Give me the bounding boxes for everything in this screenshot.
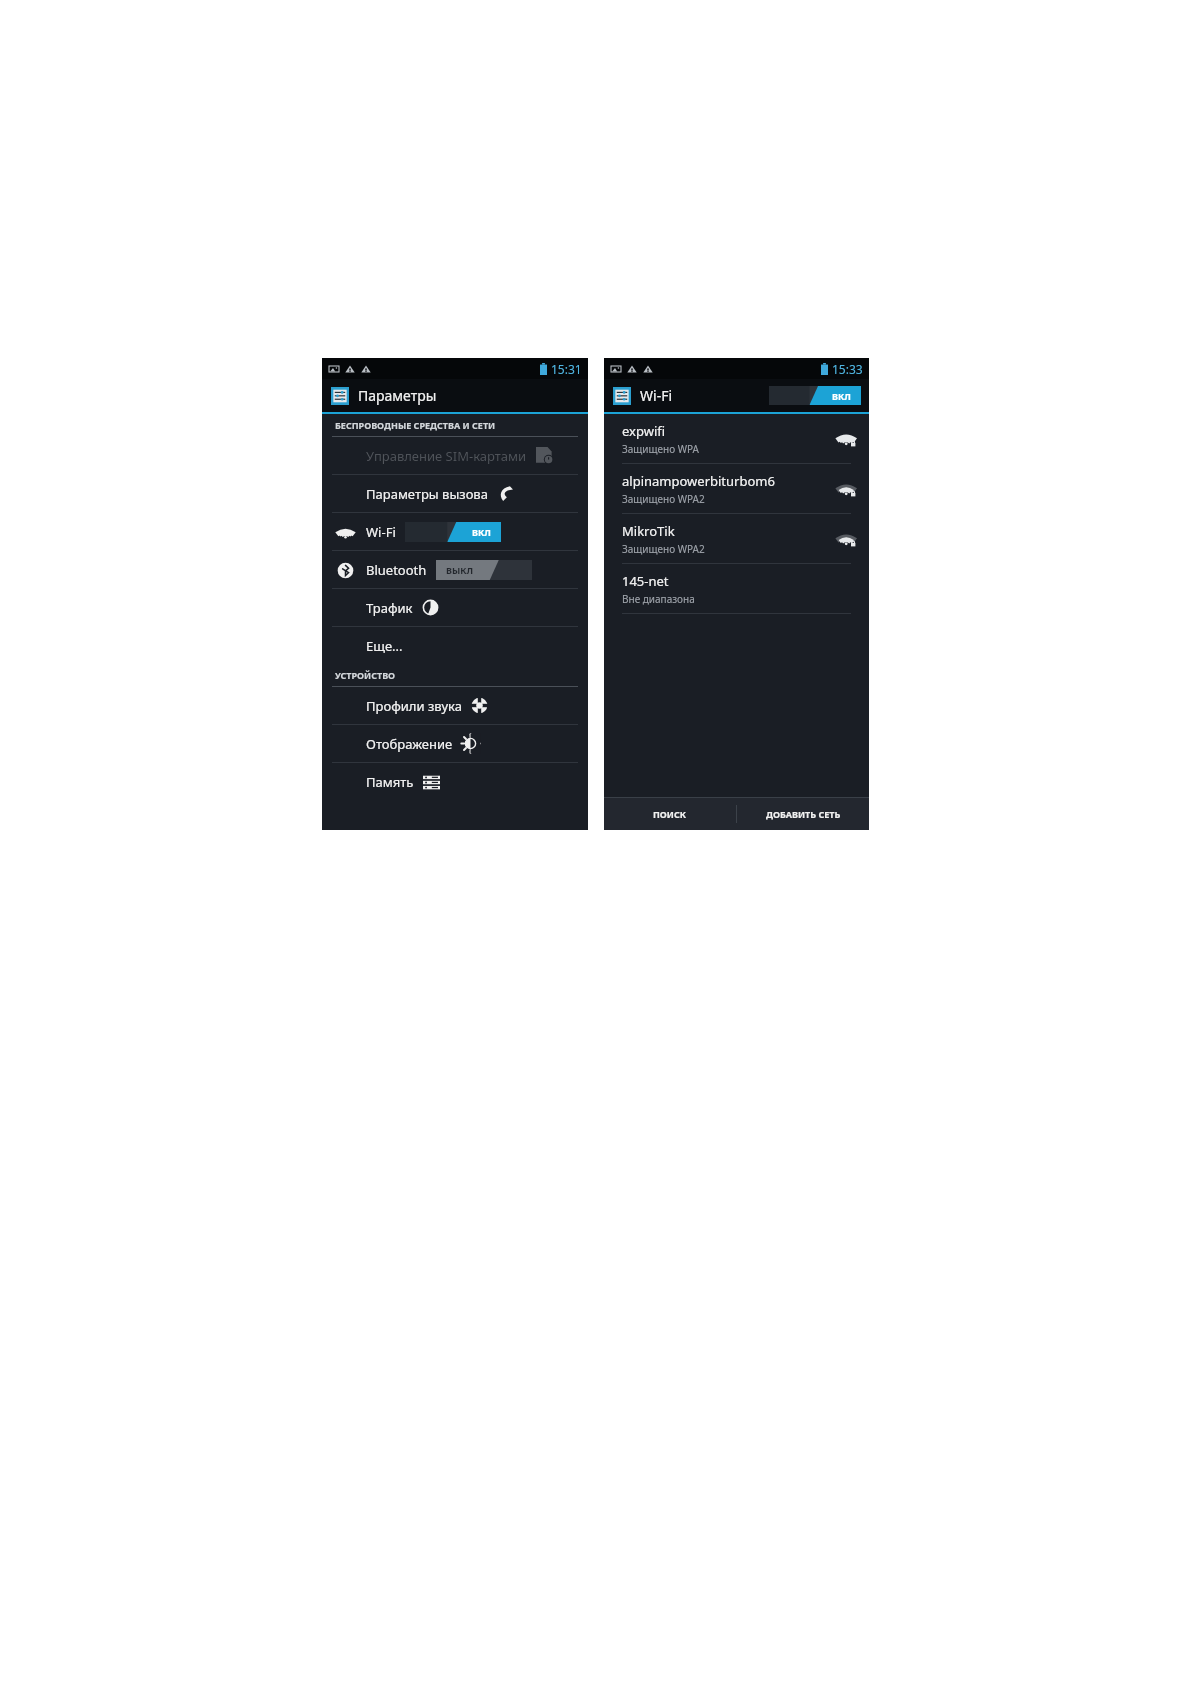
button[interactable]: 145-net — [604, 564, 869, 613]
staticText: Защищено WPA2 — [622, 492, 705, 506]
button[interactable]: MikroTik — [604, 514, 869, 563]
button[interactable]: Bluetooth — [322, 551, 588, 588]
staticText: УСТРОЙСТВО — [335, 669, 396, 681]
staticText: Управление SIM-картами — [366, 447, 527, 465]
staticText: Вне диапазона — [622, 592, 695, 606]
button[interactable]: Параметры — [322, 379, 588, 412]
button[interactable]: Управление SIM-картами — [322, 437, 588, 474]
button[interactable]: Еще... — [322, 627, 588, 664]
button[interactable]: Отображение — [322, 725, 588, 762]
staticText: Wi-Fi — [366, 523, 396, 541]
button[interactable]: ПОИСК — [604, 798, 736, 830]
staticText: Отображение — [366, 735, 453, 753]
button[interactable]: Трафик — [322, 589, 588, 626]
staticText: Параметры — [358, 386, 437, 405]
staticText: Bluetooth — [366, 561, 427, 579]
staticText: ПОИСК — [653, 808, 687, 820]
staticText: ВКЛ — [472, 526, 491, 538]
staticText: Wi-Fi — [640, 386, 673, 405]
staticText: alpinampowerbiturbom6 — [622, 472, 775, 490]
staticText: Трафик — [366, 599, 413, 617]
staticText: ДОБАВИТЬ СЕТЬ — [766, 808, 841, 820]
staticText: Защищено WPA2 — [622, 542, 705, 556]
button[interactable]: ДОБАВИТЬ СЕТЬ — [737, 798, 869, 830]
staticText: Профили звука — [366, 697, 462, 715]
staticText: ВКЛ — [832, 390, 851, 402]
button[interactable]: Параметры вызова — [322, 475, 588, 512]
staticText: 145-net — [622, 572, 669, 590]
button[interactable]: alpinampowerbiturbom6 — [604, 464, 869, 513]
staticText: 15:33 — [832, 361, 863, 377]
staticText: MikroTik — [622, 522, 675, 540]
staticText: Память — [366, 773, 414, 791]
staticText: 15:31 — [551, 361, 582, 377]
staticText: Защищено WPA — [622, 442, 699, 456]
button[interactable]: Включено — [405, 522, 501, 542]
button[interactable]: Профили звука — [322, 687, 588, 724]
button[interactable]: Wi-Fi — [322, 513, 588, 550]
staticText: expwifi — [622, 422, 666, 440]
staticText: БЕСПРОВОДНЫЕ СРЕДСТВА И СЕТИ — [335, 419, 496, 431]
button[interactable]: expwifi — [604, 414, 869, 463]
button[interactable]: Выключено — [436, 560, 532, 580]
button[interactable]: Включено — [769, 386, 861, 405]
button[interactable]: Wi-Fi — [604, 379, 869, 412]
staticText: Параметры вызова — [366, 485, 488, 503]
staticText: Еще... — [366, 637, 403, 655]
button[interactable]: Память — [322, 763, 588, 800]
staticText: ВЫКЛ — [446, 564, 474, 576]
